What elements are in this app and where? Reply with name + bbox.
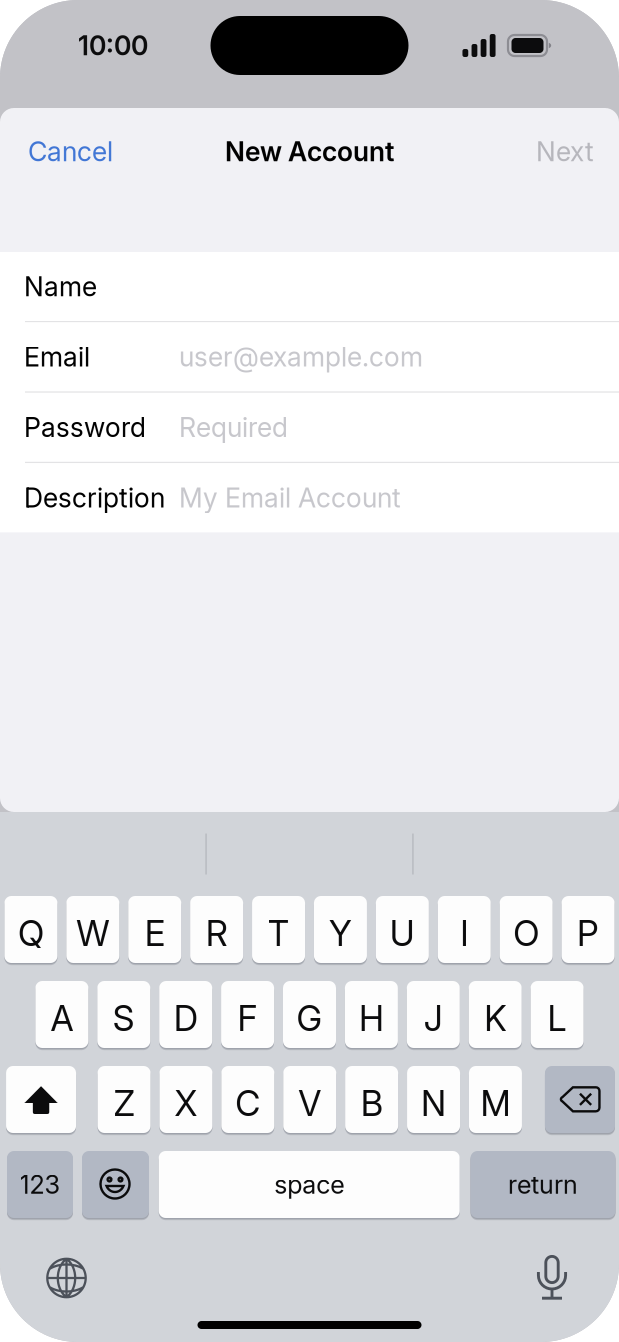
staticText: V [298,1083,321,1124]
staticText: Cancel [28,136,113,167]
staticText: return [508,1170,578,1199]
staticText: E [145,913,165,954]
button[interactable]: P [561,896,614,963]
staticText: J [424,998,443,1039]
button[interactable]: U [376,896,429,963]
button[interactable]: Z [98,1066,151,1133]
staticText: Next [536,136,594,167]
button[interactable]: Description [0,463,619,532]
button[interactable]: B [345,1066,398,1133]
button[interactable]: Password [0,393,619,462]
button[interactable]: Y [314,896,367,963]
staticText: W [76,913,109,954]
staticText: B [361,1083,383,1124]
staticText: Z [114,1083,135,1124]
button[interactable]: T [252,896,305,963]
button[interactable]: H [345,981,398,1048]
button[interactable]: J [407,981,460,1048]
staticText: X [174,1083,197,1124]
button[interactable]: F [221,981,274,1048]
button[interactable]: X [159,1066,212,1133]
button[interactable]: C [221,1066,274,1133]
button[interactable]: Dictation [537,1255,568,1301]
staticText: Name [24,271,97,302]
staticText: D [174,998,198,1039]
button[interactable]: Name [0,252,619,321]
staticText: Email [24,341,90,373]
staticText: R [206,913,228,954]
button[interactable]: K [469,981,522,1048]
button[interactable]: W [66,896,119,963]
staticText: K [484,998,506,1039]
staticText: S [113,998,135,1039]
button[interactable]: Next keyboard [46,1257,87,1298]
button[interactable]: S [97,981,150,1048]
staticText: F [238,998,258,1039]
staticText: I [460,913,468,954]
staticText: M [480,1083,510,1124]
staticText: N [421,1083,446,1124]
button[interactable]: Email [0,322,619,391]
button[interactable]: G [283,981,336,1048]
button[interactable]: return [470,1151,615,1218]
staticText: O [513,913,539,954]
staticText: 10:00 [78,30,148,61]
button[interactable]: O [500,896,553,963]
button[interactable]: Shift [6,1066,76,1133]
staticText: A [50,998,73,1039]
button[interactable]: Delete [545,1066,615,1133]
button[interactable]: V [283,1066,336,1133]
staticText: U [390,913,415,954]
staticText: Required [179,412,288,443]
staticText: T [267,913,289,954]
staticText: New Account [225,136,394,167]
button[interactable]: Next [526,124,604,179]
button[interactable]: N [407,1066,460,1133]
button[interactable]: Emoji [82,1151,149,1218]
staticText: Description [24,482,165,513]
staticText: H [359,998,384,1039]
button[interactable]: R [190,896,243,963]
staticText: L [548,998,567,1039]
staticText: Password [24,412,146,443]
button[interactable]: E [128,896,181,963]
staticText: C [235,1083,260,1124]
staticText: space [274,1170,344,1199]
button[interactable]: A [35,981,88,1048]
button[interactable]: Q [4,896,57,963]
staticText: user@example.com [179,341,423,373]
staticText: Q [18,913,44,954]
button[interactable]: space [159,1151,460,1218]
staticText: G [296,998,322,1039]
button[interactable]: D [159,981,212,1048]
staticText: P [577,913,599,954]
button[interactable]: Cancel [18,124,123,179]
staticText: My Email Account [179,482,401,513]
staticText: 123 [19,1170,60,1199]
button[interactable]: I [438,896,491,963]
button[interactable]: M [469,1066,522,1133]
button[interactable]: L [531,981,584,1048]
staticText: Y [329,913,352,954]
button[interactable]: 123 [7,1151,73,1218]
